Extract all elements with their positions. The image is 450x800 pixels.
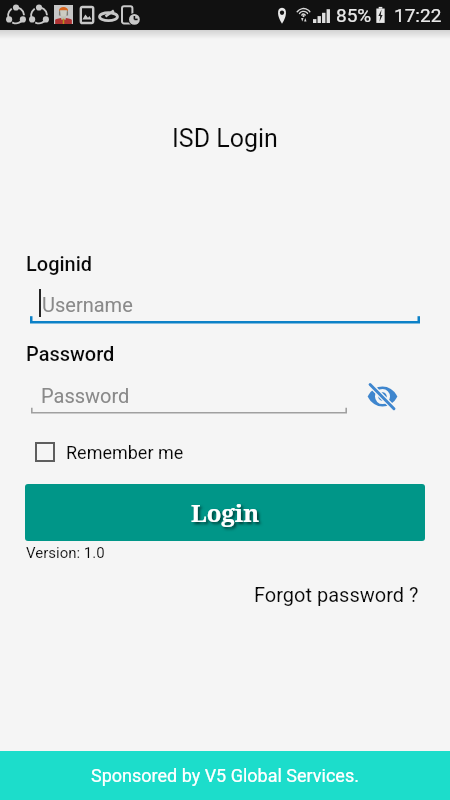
staticText: 85% [336, 4, 372, 26]
button[interactable]: Remember me [35, 437, 184, 467]
staticText: Remember me [66, 442, 184, 463]
staticText: ISD Login [172, 124, 278, 153]
button[interactable]: Login [25, 484, 425, 541]
button[interactable]: Forgot password ? [254, 583, 419, 606]
button[interactable]: Username [0, 286, 450, 326]
staticText: Login [191, 496, 260, 529]
staticText: Loginid [26, 252, 93, 275]
button[interactable]: Toggle password visibility [367, 382, 398, 413]
staticText: Version: 1.0 [26, 544, 105, 562]
staticText: Password [41, 384, 130, 407]
staticText: Sponsored by V5 Global Services. [91, 765, 359, 786]
staticText: Password [26, 342, 115, 365]
staticText: 17:22 [394, 4, 442, 26]
staticText: Username [42, 293, 133, 316]
